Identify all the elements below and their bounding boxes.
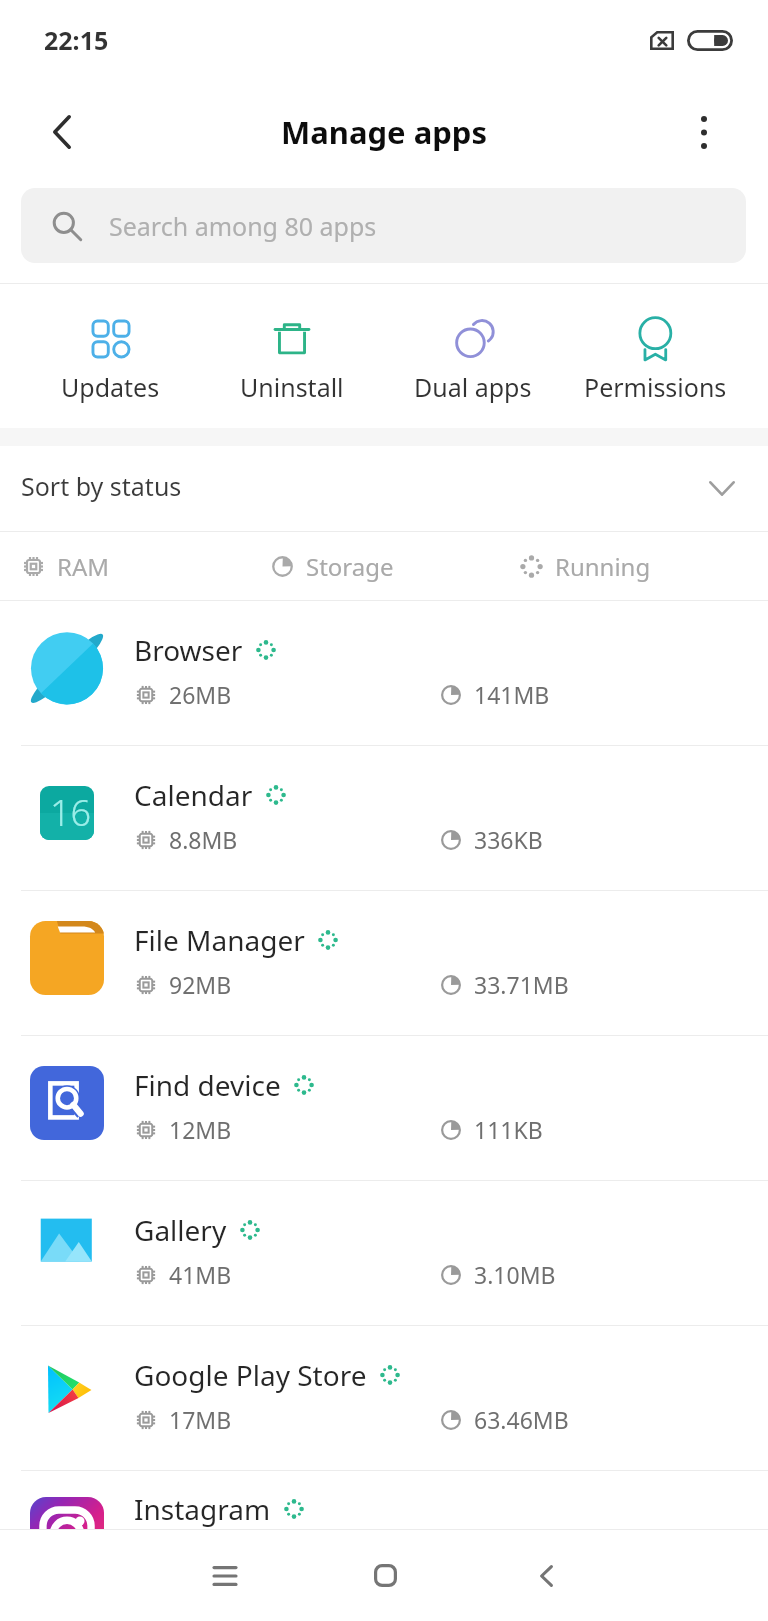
button[interactable]: Gallery [0, 1181, 768, 1325]
staticText: Find device [134, 1066, 281, 1104]
button[interactable]: Instagram [0, 1471, 768, 1529]
staticText: Updates [61, 370, 160, 404]
staticText: 336KB [474, 824, 543, 855]
button[interactable]: Search among 80 apps [21, 188, 746, 263]
button[interactable]: Google Play Store [0, 1326, 768, 1470]
staticText: 41MB [169, 1259, 232, 1290]
staticText: Search among 80 apps [109, 209, 377, 243]
staticText: Gallery [134, 1211, 227, 1249]
button[interactable]: Uninstall [201, 284, 382, 428]
button[interactable]: Running [519, 532, 768, 600]
staticText: 63.46MB [474, 1404, 569, 1435]
staticText: 141MB [474, 679, 550, 710]
button[interactable]: Recent apps [145, 1530, 305, 1621]
staticText: 3.10MB [474, 1259, 556, 1290]
staticText: 26MB [169, 679, 232, 710]
button[interactable]: Back [0, 84, 124, 180]
staticText: 16 [50, 788, 92, 837]
staticText: Dual apps [414, 370, 532, 404]
staticText: Instagram [134, 1490, 271, 1528]
button[interactable]: More options [640, 84, 768, 180]
button[interactable]: Find device [0, 1036, 768, 1180]
button[interactable]: Sort by status [0, 446, 768, 531]
button[interactable]: Browser [0, 601, 768, 745]
staticText: Manage apps [281, 111, 487, 153]
button[interactable]: Permissions [564, 284, 746, 428]
staticText: RAM [57, 550, 110, 583]
staticText: Google Play Store [134, 1356, 367, 1394]
button[interactable]: Back [466, 1530, 627, 1621]
staticText: Storage [306, 550, 394, 583]
button[interactable]: Storage [270, 532, 519, 600]
staticText: 17MB [169, 1404, 232, 1435]
button[interactable]: RAM [21, 532, 270, 600]
staticText: 8.8MB [169, 824, 238, 855]
staticText: Sort by status [21, 469, 182, 503]
staticText: File Manager [134, 921, 305, 959]
staticText: Uninstall [240, 370, 344, 404]
staticText: Calendar [134, 776, 253, 814]
staticText: Permissions [584, 370, 727, 404]
button[interactable]: 16 [0, 746, 768, 890]
button[interactable]: Dual apps [382, 284, 564, 428]
staticText: 33.71MB [474, 969, 569, 1000]
staticText: Browser [134, 631, 243, 669]
staticText: 92MB [169, 969, 232, 1000]
staticText: 22:15 [44, 23, 109, 57]
staticText: Running [555, 550, 651, 583]
button[interactable]: Home [305, 1530, 466, 1621]
button[interactable]: Updates [20, 284, 201, 428]
staticText: 12MB [169, 1114, 232, 1145]
button[interactable]: File Manager [0, 891, 768, 1035]
staticText: 111KB [474, 1114, 543, 1145]
